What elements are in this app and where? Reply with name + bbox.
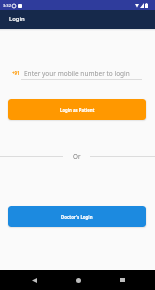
- staticText: Login: [9, 15, 25, 23]
- staticText: Or: [73, 152, 81, 161]
- staticText: 3:32: [3, 3, 11, 8]
- button[interactable]: Home: [65, 270, 91, 290]
- staticText: Enter your mobile number to login: [24, 69, 130, 78]
- staticText: Login as Patient: [60, 107, 95, 113]
- button[interactable]: Recents: [109, 270, 135, 290]
- button[interactable]: Back: [21, 270, 47, 290]
- staticText: +91: [12, 70, 20, 76]
- button[interactable]: Doctor's Login: [8, 206, 146, 227]
- staticText: Doctor's Login: [61, 214, 93, 220]
- button[interactable]: Login as Patient: [8, 99, 146, 120]
